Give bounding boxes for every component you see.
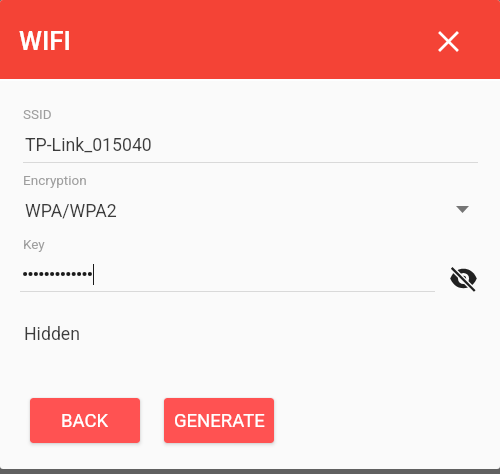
button[interactable]: BACK <box>30 398 140 443</box>
staticText: GENERATE <box>174 410 265 432</box>
staticText: BACK <box>61 410 109 432</box>
staticText: WPA/WPA2 <box>25 201 117 222</box>
staticText: Key <box>23 236 45 252</box>
staticText: Hidden <box>24 324 81 345</box>
button[interactable]: Hidden <box>0 318 500 350</box>
button[interactable]: WPA/WPA2 <box>0 196 500 228</box>
button[interactable]: Close <box>432 25 465 58</box>
button[interactable]: TP-Link_015040 <box>0 128 500 160</box>
staticText: TP-Link_015040 <box>25 135 152 156</box>
button[interactable]: Show password <box>447 262 479 294</box>
staticText: WIFI <box>19 26 71 56</box>
staticText: Encryption <box>23 172 87 188</box>
staticText: SSID <box>23 106 52 122</box>
button[interactable]: GENERATE <box>164 398 274 443</box>
